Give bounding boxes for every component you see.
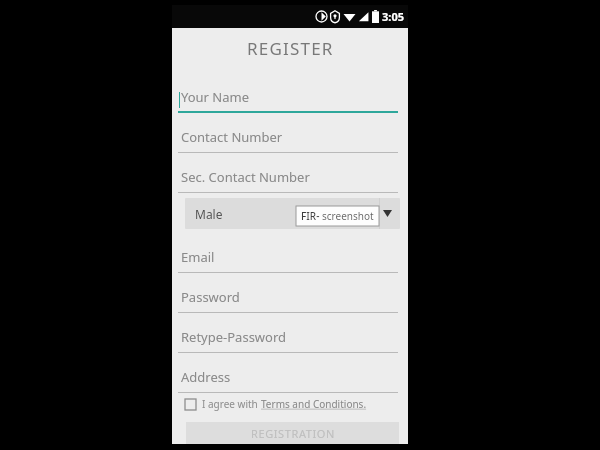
- button[interactable]: Password: [172, 273, 408, 313]
- staticText: Email: [181, 248, 215, 266]
- staticText: 3:05: [382, 9, 404, 24]
- button[interactable]: Address: [172, 353, 408, 393]
- staticText: Terms and Conditions.: [261, 397, 367, 411]
- staticText: FIR-: [301, 209, 320, 223]
- staticText: Your Name: [181, 88, 250, 106]
- staticText: Address: [181, 368, 231, 386]
- button[interactable]: Sec. Contact Number: [172, 153, 408, 193]
- button[interactable]: I agree with: [185, 393, 408, 415]
- button[interactable]: Your Name: [172, 73, 408, 113]
- staticText: I agree with: [202, 397, 261, 411]
- staticText: Contact Number: [181, 128, 283, 146]
- staticText: REGISTRATION: [251, 426, 335, 441]
- staticText: REGISTER: [247, 37, 334, 60]
- staticText: Password: [181, 288, 240, 306]
- button[interactable]: Retype-Password: [172, 313, 408, 353]
- button[interactable]: Contact Number: [172, 113, 408, 153]
- staticText: Male: [195, 206, 223, 222]
- staticText: Retype-Password: [181, 328, 287, 346]
- staticText: Sec. Contact Number: [181, 168, 310, 186]
- button[interactable]: Male: [185, 198, 400, 229]
- button[interactable]: Registration: [186, 422, 399, 444]
- button[interactable]: Email: [172, 233, 408, 273]
- staticText: screenshot: [322, 209, 374, 223]
